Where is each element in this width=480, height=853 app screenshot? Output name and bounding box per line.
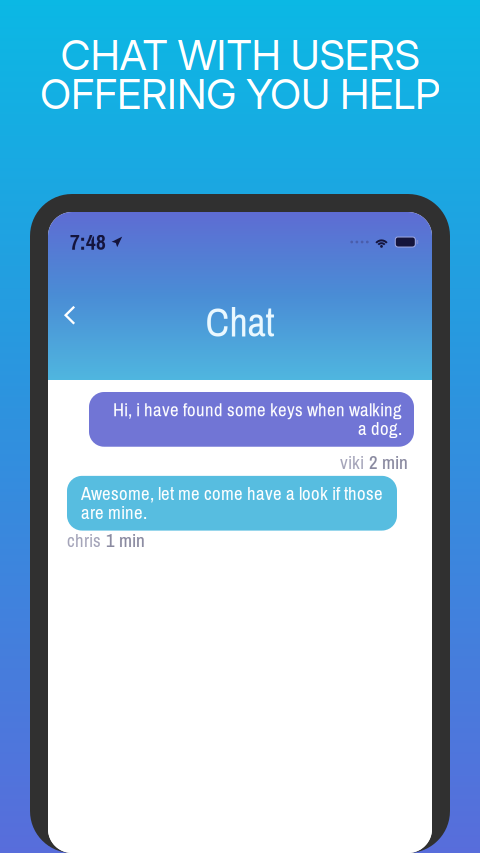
staticText: 2 min <box>369 450 408 475</box>
staticText: chris <box>67 528 101 553</box>
staticText: viki <box>340 450 364 475</box>
staticText: Awesome, let me come have a look if thos… <box>81 484 383 522</box>
staticText: Chat <box>205 295 274 349</box>
staticText: CHAT WITH USERS <box>60 30 419 80</box>
button[interactable]: Back <box>48 292 110 351</box>
staticText: OFFERING YOU HELP <box>40 69 440 119</box>
staticText: Hi, i have found some keys when walking … <box>112 400 401 438</box>
staticText: 1 min <box>106 528 145 553</box>
staticText: 7:48 <box>70 228 106 256</box>
